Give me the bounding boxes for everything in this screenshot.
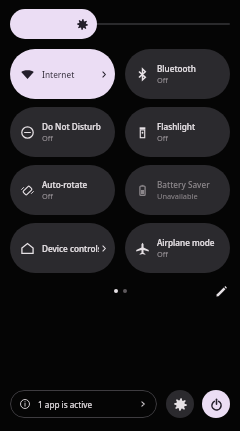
button[interactable]: Airplane mode (125, 223, 230, 273)
staticText: Bluetooth (157, 63, 196, 74)
button[interactable]: Battery Saver (125, 165, 230, 215)
staticText: Off (42, 191, 53, 201)
staticText: 1 app is active (38, 399, 93, 410)
button[interactable]: Settings (166, 390, 194, 418)
button[interactable]: Bluetooth (125, 49, 230, 99)
staticText: Off (157, 75, 168, 85)
button[interactable]: Flashlight (125, 107, 230, 157)
button[interactable]: 1 app is active (10, 390, 157, 418)
button[interactable]: Edit tiles (212, 282, 230, 300)
staticText: Off (157, 133, 168, 143)
button[interactable]: Device controls (10, 223, 115, 273)
staticText: Battery Saver (157, 179, 210, 190)
button[interactable]: Power (202, 390, 230, 418)
staticText: Do Not Disturb (42, 121, 101, 132)
button[interactable]: Auto-rotate (10, 165, 115, 215)
staticText: Unavailable (157, 191, 198, 201)
staticText: Airplane mode (157, 237, 215, 248)
staticText: Off (42, 133, 53, 143)
button[interactable]: Brightness (10, 9, 230, 39)
staticText: Internet (42, 69, 75, 80)
button[interactable]: Do Not Disturb (10, 107, 115, 157)
staticText: Auto-rotate (42, 179, 88, 190)
button[interactable]: Internet (10, 49, 115, 99)
staticText: Device controls (42, 243, 99, 254)
staticText: Off (157, 249, 168, 259)
staticText: Flashlight (157, 121, 196, 132)
